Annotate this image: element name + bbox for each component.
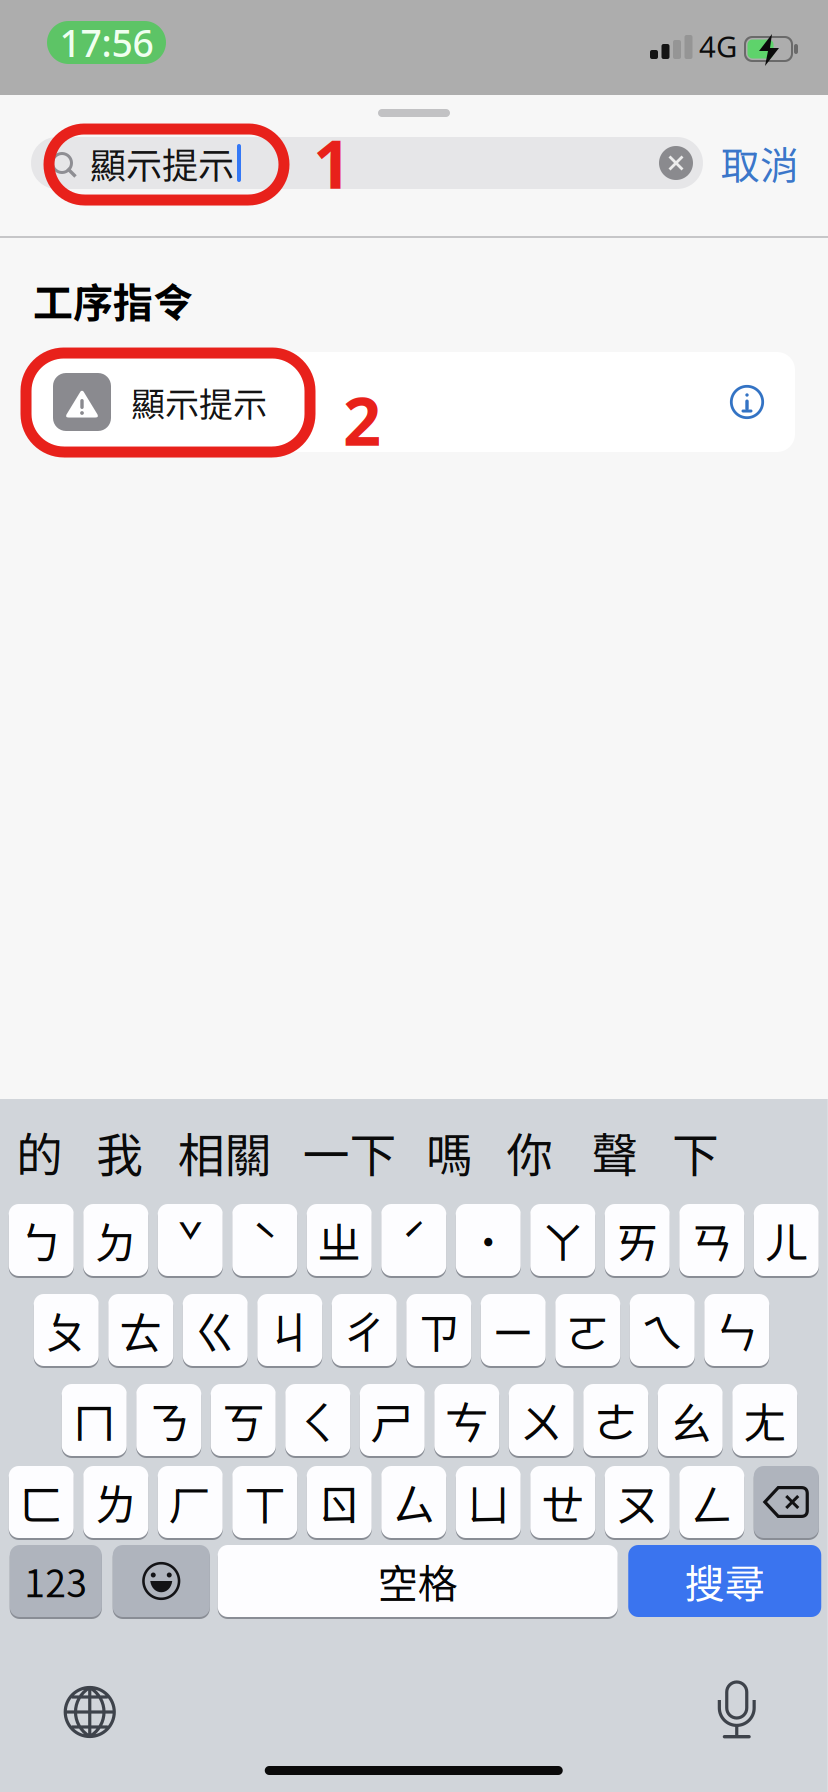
button[interactable]: 的 <box>0 1122 100 1182</box>
button[interactable]: 下 <box>636 1122 756 1182</box>
button[interactable]: ˇ <box>158 1203 223 1277</box>
button[interactable]: ㄌ <box>83 1465 148 1539</box>
staticText: ㄏ <box>168 1470 212 1534</box>
button[interactable]: ㄎ <box>211 1383 276 1457</box>
button[interactable]: Emoji <box>113 1544 210 1618</box>
staticText: ㄜ <box>594 1388 638 1452</box>
button[interactable]: ㄗ <box>406 1293 471 1367</box>
staticText: ˊ <box>401 1208 427 1272</box>
staticText: ㄑ <box>296 1388 340 1452</box>
staticText: ㄥ <box>690 1470 734 1534</box>
button[interactable]: Delete <box>754 1465 819 1539</box>
staticText: ㄎ <box>221 1388 265 1452</box>
button[interactable]: ㄡ <box>605 1465 670 1539</box>
staticText: 搜尋 <box>685 1552 765 1610</box>
button[interactable]: ㄢ <box>679 1203 744 1277</box>
button[interactable]: ㄑ <box>285 1383 350 1457</box>
button[interactable]: 搜尋 <box>629 1544 821 1618</box>
button[interactable]: ㄤ <box>732 1383 797 1457</box>
button[interactable]: ㄨ <box>509 1383 574 1457</box>
button[interactable]: ㄣ <box>704 1293 769 1367</box>
button[interactable]: ㄥ <box>679 1465 744 1539</box>
staticText: ㄣ <box>715 1298 759 1362</box>
staticText: 下 <box>672 1118 719 1186</box>
button[interactable]: ㄔ <box>332 1293 397 1367</box>
button[interactable]: ㄓ <box>307 1203 372 1277</box>
button[interactable]: ㄉ <box>83 1203 148 1277</box>
button[interactable]: ㄛ <box>555 1293 620 1367</box>
button[interactable]: 取消 <box>717 135 803 191</box>
button[interactable]: ㄩ <box>456 1465 521 1539</box>
button[interactable]: 嗎 <box>390 1122 510 1182</box>
staticText: ㄅ <box>19 1208 63 1272</box>
staticText: 顯示提示 <box>131 377 267 427</box>
button[interactable]: ㄇ <box>62 1383 127 1457</box>
staticText: 聲 <box>591 1118 638 1186</box>
staticText: 123 <box>24 1554 87 1608</box>
staticText: ㄠ <box>668 1388 712 1452</box>
button[interactable]: ㄏ <box>158 1465 223 1539</box>
staticText: ㄡ <box>615 1470 659 1534</box>
staticText: ㄗ <box>417 1298 461 1362</box>
staticText: ˇ <box>177 1208 203 1272</box>
button[interactable]: ㄐ <box>257 1293 322 1367</box>
button[interactable]: ㄠ <box>658 1383 723 1457</box>
button[interactable]: ㄒ <box>232 1465 297 1539</box>
button[interactable]: ㄚ <box>530 1203 595 1277</box>
button[interactable]: ㄘ <box>434 1383 499 1457</box>
button[interactable]: ㄧ <box>481 1293 546 1367</box>
button[interactable]: ㄅ <box>9 1203 74 1277</box>
button[interactable]: ˊ <box>381 1203 446 1277</box>
staticText: ㄍ <box>193 1298 237 1362</box>
staticText: ㄙ <box>392 1470 436 1534</box>
button[interactable]: ㄊ <box>108 1293 173 1367</box>
button[interactable]: ㄦ <box>754 1203 819 1277</box>
button[interactable]: ㄈ <box>9 1465 74 1539</box>
staticText: ㄆ <box>44 1298 88 1362</box>
button[interactable]: ㄜ <box>583 1383 648 1457</box>
button[interactable]: ㄖ <box>307 1465 372 1539</box>
staticText: 一下 <box>303 1118 397 1186</box>
button[interactable]: ㄙ <box>381 1465 446 1539</box>
button[interactable]: 123 <box>10 1544 102 1618</box>
button[interactable]: ㄟ <box>630 1293 695 1367</box>
staticText: ㄧ <box>491 1298 535 1362</box>
staticText: ㄞ <box>615 1208 659 1272</box>
button[interactable]: Info <box>719 374 775 430</box>
button[interactable]: ˙ <box>456 1203 521 1277</box>
staticText: ㄛ <box>566 1298 610 1362</box>
staticText: 的 <box>16 1118 63 1186</box>
button[interactable]: ㄕ <box>360 1383 425 1457</box>
staticText: 1 <box>313 119 351 207</box>
button[interactable]: ㄝ <box>530 1465 595 1539</box>
button[interactable]: ㄍ <box>183 1293 248 1367</box>
button[interactable]: 我 <box>60 1122 180 1182</box>
staticText: 空格 <box>378 1552 458 1610</box>
button[interactable]: ˋ <box>232 1203 297 1277</box>
staticText: ㄌ <box>94 1470 138 1534</box>
staticText: ㄋ <box>147 1388 191 1452</box>
staticText: ㄚ <box>541 1208 585 1272</box>
button[interactable]: 相關 <box>165 1122 285 1182</box>
button[interactable]: Switch keyboard <box>56 1678 124 1746</box>
button[interactable]: Clear text <box>650 137 702 189</box>
staticText: ˋ <box>252 1208 278 1272</box>
staticText: ㄔ <box>342 1298 386 1362</box>
staticText: ㄉ <box>94 1208 138 1272</box>
button[interactable]: 空格 <box>218 1544 618 1618</box>
staticText: 取消 <box>721 135 799 191</box>
button[interactable]: ㄆ <box>34 1293 99 1367</box>
button[interactable]: ㄞ <box>605 1203 670 1277</box>
staticText: 相關 <box>178 1118 272 1186</box>
staticText: ㄈ <box>19 1470 63 1534</box>
staticText: 2 <box>343 376 381 464</box>
staticText: ㄩ <box>466 1470 510 1534</box>
button[interactable]: 聲 <box>555 1122 675 1182</box>
staticText: ㄟ <box>640 1298 684 1362</box>
staticText: ㄦ <box>764 1208 808 1272</box>
staticText: ㄒ <box>243 1470 287 1534</box>
button[interactable]: 你 <box>470 1122 590 1182</box>
button[interactable]: 一下 <box>290 1122 410 1182</box>
button[interactable]: ㄋ <box>136 1383 201 1457</box>
button[interactable]: Dictation <box>718 1682 768 1746</box>
